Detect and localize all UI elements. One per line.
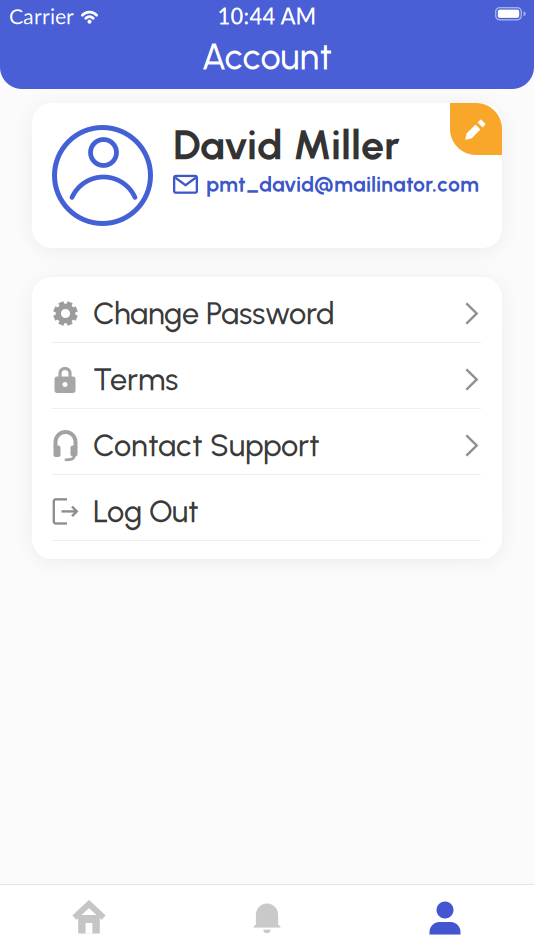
staticText: Carrier	[9, 3, 74, 29]
button[interactable]: Home	[0, 885, 178, 950]
button[interactable]: Contact Support	[32, 409, 502, 474]
button[interactable]: Log Out	[32, 475, 502, 540]
button[interactable]: Account	[356, 885, 534, 950]
button[interactable]: Change Password	[32, 277, 502, 342]
button[interactable]: Edit profile	[450, 103, 502, 155]
button[interactable]: Notifications	[178, 885, 356, 950]
staticText: Log Out	[93, 493, 199, 530]
button[interactable]: Terms	[32, 343, 502, 408]
staticText: Terms	[93, 361, 178, 398]
staticText: Contact Support	[93, 427, 320, 464]
staticText: Account	[201, 35, 332, 79]
staticText: David Miller	[173, 120, 400, 169]
button[interactable]: pmt_david@mailinator.com	[173, 171, 479, 197]
staticText: pmt_david@mailinator.com	[206, 171, 479, 197]
staticText: 10:44 AM	[217, 3, 316, 29]
staticText: Change Password	[93, 295, 335, 332]
